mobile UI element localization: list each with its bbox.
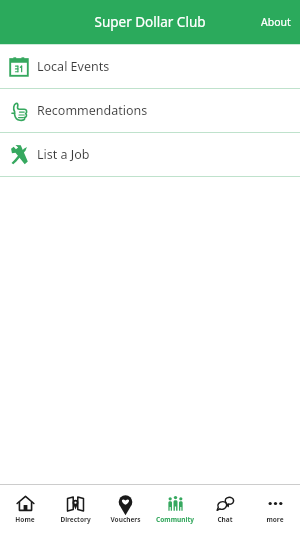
staticText: Recommendations xyxy=(37,102,148,119)
button[interactable]: Community xyxy=(150,485,200,533)
button[interactable]: Recommendations xyxy=(0,89,300,132)
staticText: About xyxy=(261,15,291,29)
button[interactable]: Directory xyxy=(50,485,100,533)
staticText: Super Dollar Club xyxy=(94,13,206,31)
button[interactable]: Local Events xyxy=(0,45,300,88)
button[interactable]: more xyxy=(250,485,300,533)
staticText: Home xyxy=(15,515,35,524)
staticText: Chat xyxy=(217,515,233,524)
button[interactable]: List a Job xyxy=(0,133,300,176)
staticText: Vouchers xyxy=(110,515,141,524)
staticText: Directory xyxy=(60,515,91,524)
staticText: more xyxy=(266,515,284,524)
button[interactable]: Chat xyxy=(200,485,250,533)
button[interactable]: Home xyxy=(0,485,50,533)
staticText: List a Job xyxy=(37,146,90,163)
staticText: Community xyxy=(156,515,194,524)
staticText: Local Events xyxy=(37,58,110,75)
button[interactable]: About xyxy=(252,0,300,44)
button[interactable]: Vouchers xyxy=(100,485,150,533)
